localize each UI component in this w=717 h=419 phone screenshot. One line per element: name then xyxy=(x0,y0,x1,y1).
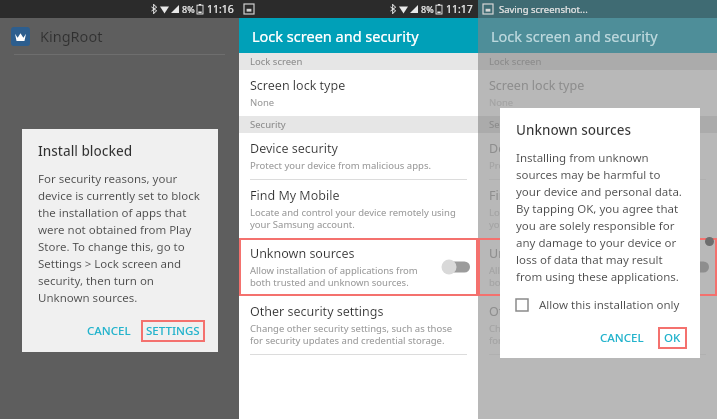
staticText: Find My Mobile xyxy=(489,187,579,204)
button[interactable]: Unknown sources xyxy=(478,238,717,296)
staticText: None xyxy=(489,96,514,109)
staticText: Allow installation of applications from … xyxy=(250,264,434,289)
staticText: Security xyxy=(489,118,525,131)
staticText: Locate and control your device remotely … xyxy=(489,206,706,231)
button[interactable]: Screen lock type xyxy=(478,70,717,116)
staticText: Other security settings xyxy=(250,303,384,320)
staticText: 8% xyxy=(421,3,434,15)
staticText: Installing from unknown sources may be h… xyxy=(516,150,687,284)
staticText: 11:16 xyxy=(207,2,234,16)
staticText: Change other security settings, such as … xyxy=(489,322,706,347)
button[interactable]: OK xyxy=(658,327,687,349)
staticText: OK xyxy=(664,330,681,346)
staticText: Device security xyxy=(489,140,577,157)
button[interactable]: Device security xyxy=(239,133,478,179)
staticText: Screen lock type xyxy=(489,77,585,94)
button[interactable]: Unknown sources toggle xyxy=(440,259,470,275)
staticText: 11:17 xyxy=(446,2,473,16)
button[interactable]: Other security settings xyxy=(239,296,478,354)
staticText: Saving screenshot... xyxy=(499,3,588,16)
staticText: Locate and control your device remotely … xyxy=(250,206,467,231)
button[interactable]: SETTINGS xyxy=(141,320,205,342)
staticText: Unknown sources xyxy=(250,245,355,262)
staticText: None xyxy=(250,96,275,109)
staticText: KingRoot xyxy=(40,26,103,46)
staticText: Unknown sources xyxy=(489,245,594,262)
staticText: Other security settings xyxy=(489,303,623,320)
staticText: Allow installation of applications from … xyxy=(489,264,673,289)
staticText: Find My Mobile xyxy=(250,187,340,204)
staticText: SETTINGS xyxy=(146,323,200,339)
staticText: Unknown sources xyxy=(516,121,631,139)
staticText: Lock screen and security xyxy=(252,26,419,46)
staticText: CANCEL xyxy=(600,330,644,346)
staticText: Allow this installation only xyxy=(539,297,680,313)
button[interactable]: CANCEL xyxy=(83,319,135,343)
staticText: 8% xyxy=(182,3,195,15)
staticText: Protect your device from malicious apps. xyxy=(250,159,431,172)
staticText: For security reasons, your device is cur… xyxy=(38,171,205,305)
staticText: Change other security settings, such as … xyxy=(250,322,467,347)
button[interactable]: Find My Mobile xyxy=(478,180,717,238)
staticText: Install blocked xyxy=(38,142,133,160)
button[interactable]: CANCEL xyxy=(596,326,648,350)
staticText: Lock screen xyxy=(250,55,303,68)
button[interactable]: Screen lock type xyxy=(239,70,478,116)
button[interactable]: Unknown sources toggle xyxy=(679,259,709,275)
staticText: Device security xyxy=(250,140,338,157)
staticText: CANCEL xyxy=(87,323,131,339)
staticText: Security xyxy=(250,118,286,131)
staticText: Lock screen xyxy=(489,55,542,68)
staticText: Screen lock type xyxy=(250,77,346,94)
button[interactable]: Device security xyxy=(478,133,717,179)
button[interactable]: Unknown sources xyxy=(239,238,478,296)
button[interactable]: Other security settings xyxy=(478,296,717,354)
button[interactable]: Find My Mobile xyxy=(239,180,478,238)
staticText: Lock screen and security xyxy=(491,26,658,46)
staticText: Protect your device from malicious apps. xyxy=(489,159,670,172)
button[interactable]: Allow this installation only xyxy=(516,297,687,313)
